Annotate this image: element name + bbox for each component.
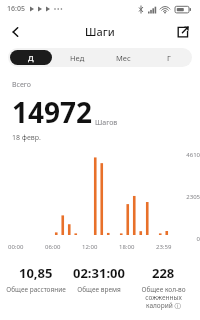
staticText: 4610	[174, 151, 200, 159]
button[interactable]: Г	[148, 50, 190, 65]
button[interactable]: 02:31:00	[73, 264, 125, 294]
staticText: Г	[167, 53, 171, 63]
staticText: 18 февр.	[12, 133, 41, 143]
staticText: 0	[174, 235, 200, 243]
staticText: Нед	[70, 53, 85, 63]
button[interactable]: Д	[10, 50, 52, 65]
staticText: 00:00	[8, 243, 24, 251]
staticText: Общее расстояние	[6, 285, 66, 294]
staticText: 228	[152, 264, 175, 282]
staticText: 2305	[174, 193, 200, 201]
staticText: Д	[28, 53, 34, 63]
staticText: 10,85	[19, 264, 53, 282]
button[interactable]: Back	[4, 20, 28, 44]
staticText: Общее время	[77, 285, 121, 294]
staticText: 23:59	[156, 243, 172, 251]
staticText: Шагов	[95, 118, 118, 128]
staticText: 12:00	[82, 243, 98, 251]
button[interactable]: Мес	[102, 50, 144, 65]
staticText: 16:05	[7, 4, 25, 14]
staticText: 02:31:00	[73, 264, 125, 282]
button[interactable]: Нед	[56, 50, 98, 65]
button[interactable]: 228	[141, 264, 186, 310]
button[interactable]: Share	[171, 20, 195, 44]
button[interactable]: 10,85	[6, 264, 66, 294]
staticText: 18:00	[119, 243, 135, 251]
staticText: 06:00	[45, 243, 61, 251]
staticText: Шаги	[85, 24, 115, 39]
staticText: Всего	[12, 80, 31, 90]
staticText: Общее кол-во сожженных калорий ⓘ	[141, 285, 186, 310]
staticText: Мес	[116, 53, 131, 63]
staticText: 14972	[12, 93, 93, 131]
